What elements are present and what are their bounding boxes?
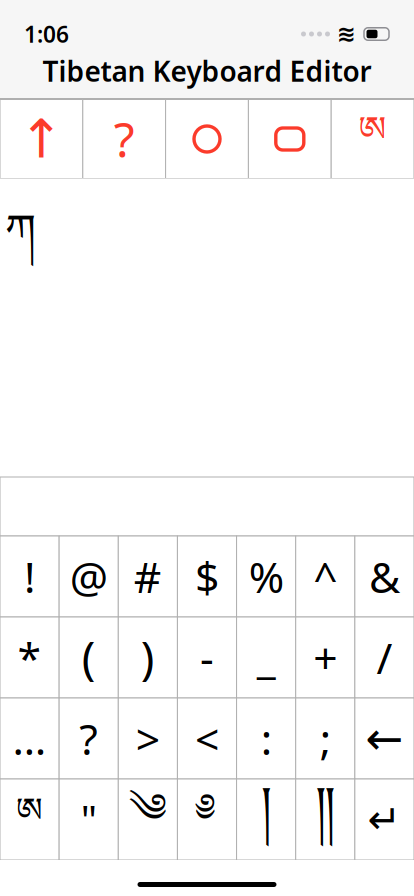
staticText: " bbox=[81, 793, 97, 846]
staticText: - bbox=[200, 629, 214, 686]
button[interactable]: Tibetan letter bbox=[331, 99, 414, 178]
staticText: ཀ bbox=[5, 182, 36, 303]
button[interactable]: : bbox=[237, 698, 296, 779]
button[interactable]: Return bbox=[355, 779, 414, 860]
button[interactable]: Circle bbox=[166, 99, 248, 178]
staticText: / bbox=[376, 629, 392, 686]
button[interactable]: & bbox=[355, 536, 414, 617]
staticText: > bbox=[136, 710, 160, 767]
button[interactable]: _ bbox=[237, 617, 296, 698]
button[interactable]: ཨ bbox=[0, 779, 59, 860]
button[interactable]: % bbox=[237, 536, 296, 617]
staticText: * bbox=[18, 629, 42, 686]
staticText: ← bbox=[365, 713, 403, 764]
staticText: ༅ bbox=[198, 765, 216, 874]
button[interactable]: Question mark bbox=[83, 99, 166, 178]
staticText: ། bbox=[261, 750, 272, 889]
button[interactable]: ༎ bbox=[296, 779, 355, 860]
staticText: ? bbox=[114, 107, 135, 171]
staticText: … bbox=[13, 710, 47, 767]
button[interactable]: @ bbox=[59, 536, 118, 617]
staticText: ≋ bbox=[337, 21, 356, 47]
staticText: _ bbox=[257, 629, 276, 686]
button[interactable]: Shift bbox=[0, 99, 83, 178]
staticText: # bbox=[134, 548, 162, 605]
button[interactable]: + bbox=[296, 617, 355, 698]
button[interactable]: ^ bbox=[296, 536, 355, 617]
button[interactable]: Rounded rectangle bbox=[248, 99, 331, 178]
staticText: Tibetan Keyboard Editor bbox=[42, 52, 371, 90]
button[interactable]: ; bbox=[296, 698, 355, 779]
staticText: ༎ bbox=[315, 750, 335, 889]
staticText: ( bbox=[82, 627, 96, 688]
button[interactable]: Backspace bbox=[355, 698, 414, 779]
staticText: + bbox=[313, 629, 337, 686]
button[interactable]: … bbox=[0, 698, 59, 779]
button[interactable]: ( bbox=[59, 617, 118, 698]
button[interactable]: ) bbox=[118, 617, 177, 698]
staticText: ? bbox=[79, 710, 98, 767]
staticText: : bbox=[261, 710, 272, 767]
button[interactable]: - bbox=[177, 617, 236, 698]
staticText: 1:06 bbox=[24, 19, 69, 49]
staticText: & bbox=[369, 548, 400, 605]
button[interactable]: / bbox=[355, 617, 414, 698]
button[interactable]: $ bbox=[177, 536, 236, 617]
button[interactable]: ! bbox=[0, 536, 59, 617]
button[interactable]: ? bbox=[59, 698, 118, 779]
staticText: ཨ bbox=[16, 774, 43, 865]
staticText: ) bbox=[141, 627, 155, 688]
button[interactable]: < bbox=[177, 698, 236, 779]
staticText: ^ bbox=[313, 548, 337, 605]
staticText: < bbox=[195, 710, 219, 767]
button[interactable]: ། bbox=[237, 779, 296, 860]
staticText: ; bbox=[320, 710, 331, 767]
staticText: ཨ bbox=[359, 91, 387, 186]
button[interactable]: ༅ bbox=[177, 779, 236, 860]
staticText: ↵ bbox=[367, 797, 401, 842]
staticText: ! bbox=[24, 548, 35, 605]
staticText: % bbox=[249, 548, 284, 605]
button[interactable]: > bbox=[118, 698, 177, 779]
button[interactable]: * bbox=[0, 617, 59, 698]
staticText: @ bbox=[70, 548, 108, 605]
button[interactable]: " bbox=[59, 779, 118, 860]
button[interactable]: # bbox=[118, 536, 177, 617]
staticText: ↑ bbox=[19, 109, 64, 169]
staticText: $ bbox=[195, 548, 219, 605]
staticText: ༄ bbox=[129, 765, 167, 874]
button[interactable]: ༄ bbox=[118, 779, 177, 860]
